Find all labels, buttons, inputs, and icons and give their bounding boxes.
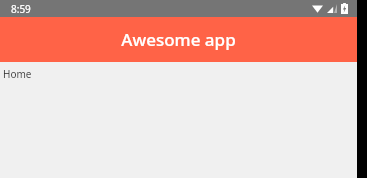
button[interactable]: Awesome app (0, 17, 357, 62)
staticText: 8:59 (11, 2, 31, 16)
staticText: Awesome app (121, 28, 236, 51)
staticText: Home (3, 67, 32, 81)
